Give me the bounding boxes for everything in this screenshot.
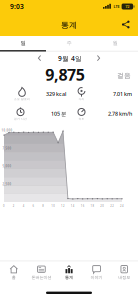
staticText: 72: [125, 4, 129, 9]
button[interactable]: 주: [46, 36, 92, 50]
staticText: 10: [51, 204, 55, 208]
staticText: 2,500: [2, 182, 11, 186]
button[interactable]: 이야기: [83, 265, 110, 280]
staticText: 0: [3, 204, 5, 208]
staticText: 8: [42, 204, 44, 208]
staticText: 329 kcal: [46, 90, 66, 97]
staticText: 소모 칼로리: [14, 97, 30, 101]
staticText: 9:03: [10, 2, 24, 11]
staticText: 9월 4일: [58, 54, 82, 63]
staticText: 걷기 시간: [14, 117, 27, 120]
staticText: 걸음: [117, 71, 131, 80]
button[interactable]: 이전 날짜: [38, 55, 41, 61]
staticText: LTE: [114, 4, 120, 9]
staticText: 거리: [78, 97, 84, 101]
staticText: 7.01 km: [113, 90, 132, 97]
staticText: 14: [71, 204, 75, 208]
button[interactable]: 홈: [0, 265, 28, 280]
staticText: 5,000: [2, 164, 11, 168]
staticText: 10,000: [1, 129, 12, 132]
staticText: 18: [90, 204, 94, 208]
staticText: 24: [120, 204, 124, 208]
staticText: 105 분: [51, 110, 66, 117]
staticText: 16: [81, 204, 85, 208]
staticText: 일: [20, 40, 25, 46]
staticText: 통계: [61, 20, 77, 30]
staticText: 12: [61, 204, 65, 208]
staticText: 홈: [12, 275, 16, 280]
staticText: 내정보: [118, 275, 130, 280]
button[interactable]: 돈버는미션: [28, 265, 55, 280]
staticText: 통계: [65, 275, 73, 280]
staticText: 2: [13, 204, 15, 208]
button[interactable]: 내정보: [110, 265, 138, 280]
staticText: 4: [23, 204, 25, 208]
staticText: 2.78 km/h: [108, 110, 132, 117]
staticText: 속도: [78, 117, 84, 120]
button[interactable]: 일: [0, 36, 46, 50]
staticText: 주: [66, 40, 71, 46]
button[interactable]: 공유: [121, 20, 138, 29]
staticText: 20: [100, 204, 104, 208]
staticText: 이야기: [91, 275, 103, 280]
button[interactable]: 월: [92, 36, 138, 50]
button[interactable]: 통계: [55, 265, 83, 280]
staticText: 7,500: [2, 147, 11, 150]
button[interactable]: 다음 날짜: [97, 55, 100, 61]
staticText: 월: [112, 40, 117, 46]
staticText: 9,875: [45, 64, 85, 85]
staticText: 22: [110, 204, 114, 208]
staticText: 돈버는미션: [31, 275, 51, 280]
staticText: 6: [32, 204, 34, 208]
